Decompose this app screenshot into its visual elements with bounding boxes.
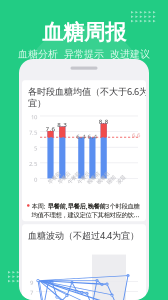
staticText: 各时段血糖均值（不大于6.6为宜） <box>28 85 148 109</box>
staticText: 5 <box>30 298 33 300</box>
staticText: 6.4 <box>87 132 97 141</box>
staticText: 血糖周报 <box>42 19 126 46</box>
staticText: 睡前 <box>105 181 115 188</box>
staticText: 血糖波动（不超过4.4为宜） <box>28 229 139 241</box>
staticText: 7.5 <box>29 129 37 137</box>
staticText: 8.8 <box>99 117 109 126</box>
staticText: 晚餐后 <box>95 181 110 188</box>
staticText: 晚餐前 <box>86 181 101 188</box>
staticText: 本周: 午餐前,睡前2个时段血糖波动大，建议定于下周进行动态血糖监测 <box>32 222 138 238</box>
staticText: 午餐后 <box>76 181 91 188</box>
staticText: 早餐后 <box>56 181 71 188</box>
staticText: 0 <box>34 175 37 183</box>
staticText: 5 <box>34 144 37 152</box>
staticText: 早餐前 <box>46 181 61 188</box>
staticText: 8.3 <box>57 120 67 129</box>
staticText: 9 <box>30 278 33 286</box>
staticText: 血糖分析 异常提示 改进建议 <box>18 48 150 60</box>
staticText: 2.5 <box>29 160 37 168</box>
staticText: 7.6 <box>45 125 55 133</box>
staticText: 7 <box>30 288 33 296</box>
staticText: 凌晨 <box>115 181 125 188</box>
staticText: 10 <box>31 113 37 121</box>
staticText: 6.4 <box>76 132 86 141</box>
staticText: 本周: 早餐前,早餐后,晚餐前3个时段血糖均值不理想，建议定位下其相对应的饮食方… <box>32 202 141 219</box>
staticText: 6.6 <box>132 131 140 139</box>
staticText: 午餐前 <box>66 181 81 188</box>
